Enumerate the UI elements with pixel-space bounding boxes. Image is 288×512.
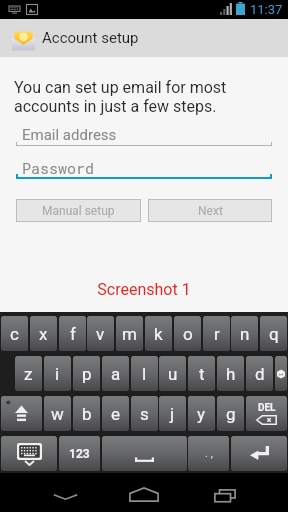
button[interactable]: l [131, 356, 158, 391]
staticText: n [240, 324, 250, 344]
staticText: v [96, 324, 105, 344]
button[interactable]: Recent apps [202, 473, 248, 512]
button[interactable]: shift [1, 396, 42, 431]
button[interactable]: b [73, 396, 100, 431]
button[interactable]: punctuation [188, 436, 229, 471]
staticText: y [197, 404, 206, 424]
button[interactable]: z [15, 356, 42, 391]
button[interactable]: a [102, 356, 129, 391]
staticText: DEL [258, 402, 276, 414]
button[interactable]: Manual setup [17, 200, 140, 221]
button[interactable]: Back [42, 473, 88, 512]
staticText: Next [198, 204, 223, 218]
staticText: i [55, 364, 60, 384]
staticText: m [122, 324, 137, 344]
staticText: b [82, 404, 92, 424]
staticText: t [199, 364, 205, 384]
button[interactable]: v [87, 316, 114, 351]
staticText: Account setup [42, 29, 139, 47]
staticText: f [70, 324, 76, 344]
button[interactable]: s [131, 396, 158, 431]
staticText: You can set up email for most accounts i… [14, 78, 238, 116]
staticText: d [255, 364, 265, 384]
staticText: h [226, 364, 236, 384]
staticText: Manual setup [42, 204, 115, 218]
button[interactable]: c [1, 316, 28, 351]
button[interactable]: r [203, 316, 230, 351]
button[interactable]: k [145, 316, 172, 351]
staticText: Screenshot 1 [0, 280, 288, 299]
staticText: Email address [22, 126, 117, 144]
button[interactable]: o [174, 316, 201, 351]
staticText: 123 [69, 447, 90, 461]
button[interactable]: 123 [59, 436, 100, 471]
staticText: w [51, 404, 64, 424]
staticText: Password [22, 158, 95, 178]
button[interactable]: q [260, 316, 287, 351]
button[interactable]: u [159, 356, 186, 391]
staticText: u [168, 364, 178, 384]
button[interactable]: h [217, 356, 244, 391]
staticText: . , [205, 447, 213, 460]
button[interactable]: enter [231, 436, 287, 471]
staticText: g [226, 404, 236, 424]
button[interactable]: p [73, 356, 100, 391]
button[interactable]: Next [149, 200, 271, 221]
staticText: r [214, 324, 220, 344]
staticText: x [39, 324, 48, 344]
button[interactable]: t [188, 356, 215, 391]
button[interactable]: n [231, 316, 258, 351]
button[interactable]: delete [246, 396, 287, 431]
button[interactable]: g [217, 396, 244, 431]
button[interactable]: j [159, 396, 186, 431]
button[interactable]: e [102, 396, 129, 431]
staticText: p [82, 364, 92, 384]
staticText: l [142, 364, 147, 384]
staticText: a [111, 364, 121, 384]
staticText: o [183, 324, 193, 344]
staticText: e [111, 404, 121, 424]
button[interactable]: d [246, 356, 273, 391]
button[interactable]: x [30, 316, 57, 351]
button[interactable]: y [188, 396, 215, 431]
staticText: s [140, 404, 149, 424]
button[interactable]: Home [121, 473, 167, 512]
staticText: c [10, 324, 19, 344]
staticText: 11:37 [250, 2, 283, 17]
staticText: z [24, 364, 33, 384]
button[interactable]: i [44, 356, 71, 391]
button[interactable]: space [102, 436, 187, 471]
staticText: j [170, 404, 175, 424]
staticText: q [269, 324, 279, 344]
staticText: k [154, 324, 163, 344]
button[interactable]: m [116, 316, 143, 351]
button[interactable]: w [44, 396, 71, 431]
button[interactable]: f [59, 316, 86, 351]
button[interactable]: Switch keyboard [1, 436, 57, 471]
button[interactable]: emoji [275, 356, 287, 391]
